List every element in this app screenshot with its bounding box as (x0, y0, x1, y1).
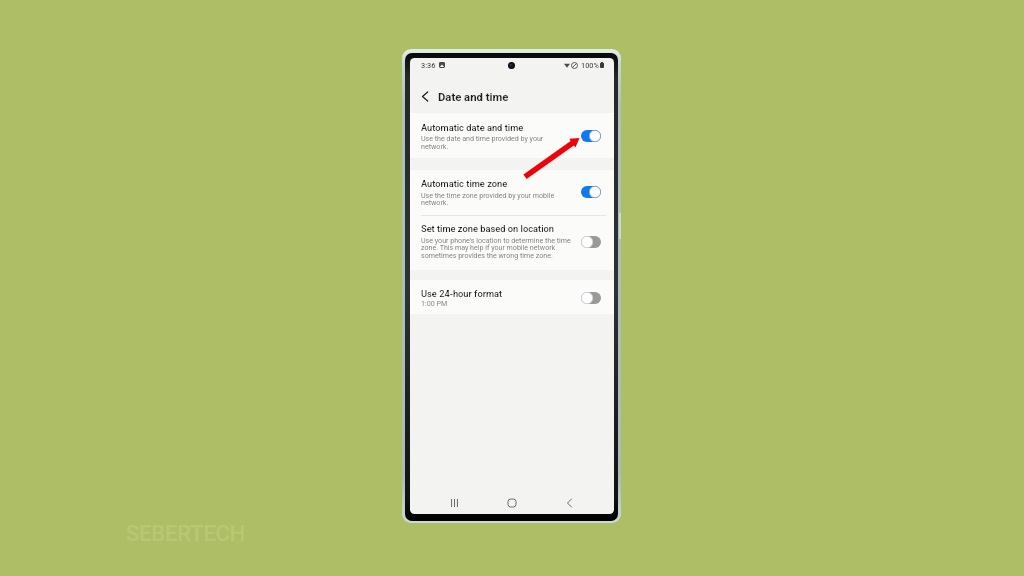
staticText: network. (421, 142, 449, 150)
staticText: 100% (581, 61, 599, 70)
button[interactable] (410, 170, 614, 215)
staticText: SEBERTECH (126, 521, 246, 547)
staticText: Set time zone based on location (421, 223, 554, 234)
staticText: Automatic time zone (421, 178, 508, 189)
staticText: Automatic date and time (421, 122, 524, 133)
staticText: Use the time zone provided by your mobil… (421, 191, 555, 199)
button[interactable]: Automatic date and time, on (578, 127, 604, 145)
staticText: Use your phone's location to determine t… (421, 236, 571, 244)
staticText: Date and time (438, 91, 509, 104)
button[interactable]: Back (558, 492, 580, 514)
button[interactable]: Set time zone based on location, off (578, 233, 604, 251)
staticText: Use the date and time provided by your (421, 134, 544, 142)
button[interactable]: Recent apps (443, 492, 465, 514)
button[interactable]: Automatic time zone, on (578, 183, 604, 201)
button[interactable] (410, 216, 614, 271)
button[interactable] (410, 280, 614, 314)
staticText: 1:00 PM (421, 299, 448, 307)
button[interactable]: Navigate up (418, 90, 431, 103)
button[interactable] (410, 113, 614, 158)
staticText: sometimes provides the wrong time zone. (421, 251, 553, 259)
staticText: zone. This may help if your mobile netwo… (421, 243, 556, 251)
staticText: 3:36 (421, 61, 436, 70)
button[interactable]: Use 24-hour format, off (578, 289, 604, 307)
staticText: network. (421, 198, 449, 206)
button[interactable]: Home (501, 492, 523, 514)
staticText: Use 24-hour format (421, 288, 503, 299)
